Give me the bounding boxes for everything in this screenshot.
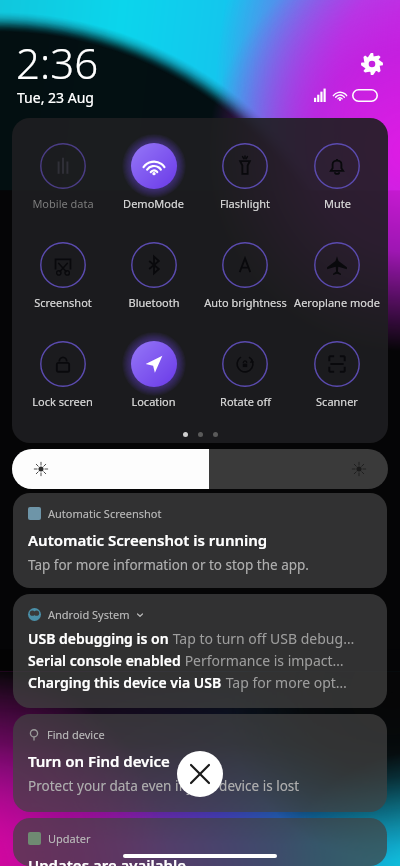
button[interactable]: Flashlight <box>199 139 291 211</box>
button[interactable]: Android System <box>13 594 387 708</box>
button[interactable]: Automatic Screenshot <box>13 493 387 588</box>
button[interactable]: Rotate off <box>199 337 291 409</box>
staticText: Find device <box>47 727 105 742</box>
button[interactable]: Find device <box>13 714 387 812</box>
staticText: Rotate off <box>220 394 271 409</box>
staticText: 2:36 <box>16 34 99 91</box>
button[interactable]: Bluetooth <box>108 238 199 310</box>
staticText: Flashlight <box>220 196 270 211</box>
staticText: Android System <box>48 607 130 622</box>
staticText: Protect your data even if your device is… <box>28 777 300 795</box>
staticText: Mute <box>324 196 351 211</box>
staticText: Automatic Screenshot <box>48 506 162 521</box>
staticText: Mobile data <box>32 196 94 211</box>
staticText: Tap to turn off USB debug… <box>169 629 355 648</box>
staticText: Scanner <box>316 394 358 409</box>
button[interactable]: Settings <box>358 50 386 78</box>
staticText: Tap for more opt… <box>222 673 347 692</box>
staticText: Turn on Find device <box>28 751 170 771</box>
staticText: Lock screen <box>32 394 93 409</box>
button[interactable]: DemoMode <box>108 139 199 211</box>
button[interactable]: Auto brightness <box>199 238 291 310</box>
button[interactable]: Screenshot <box>17 238 108 310</box>
staticText: Serial console enabled <box>28 651 181 670</box>
staticText: Charging this device via USB <box>28 673 222 692</box>
button[interactable]: Mobile data <box>17 139 108 211</box>
button[interactable]: Close <box>177 751 223 797</box>
button[interactable]: Mute <box>291 139 383 211</box>
button[interactable]: Aeroplane mode <box>291 238 383 310</box>
staticText: Location <box>131 394 176 409</box>
staticText: Automatic Screenshot is running <box>28 530 268 550</box>
staticText: Aeroplane mode <box>294 295 380 310</box>
staticText: USB debugging is on <box>28 629 169 648</box>
staticText: Auto brightness <box>204 295 287 310</box>
staticText: Performance is impact… <box>181 651 344 670</box>
button[interactable]: Lock screen <box>17 337 108 409</box>
staticText: Tap for more information or to stop the … <box>28 556 309 574</box>
button[interactable]: Scanner <box>291 337 383 409</box>
button[interactable]: Location <box>108 337 199 409</box>
staticText: DemoMode <box>123 196 184 211</box>
staticText: Screenshot <box>34 295 92 310</box>
staticText: Bluetooth <box>128 295 180 310</box>
staticText: Updater <box>48 831 91 846</box>
staticText: Tue, 23 Aug <box>17 88 94 107</box>
button[interactable]: Brightness <box>12 449 388 489</box>
staticText: Updates are available <box>28 855 187 866</box>
button[interactable]: Updater <box>13 818 387 866</box>
